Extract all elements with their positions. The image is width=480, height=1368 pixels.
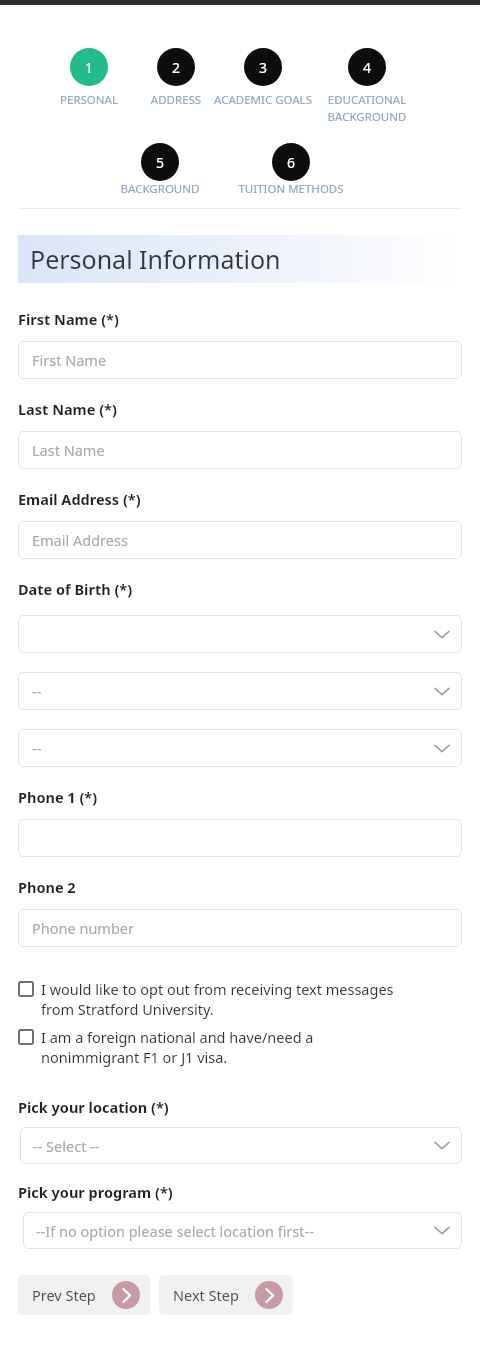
staticText: PERSONAL bbox=[44, 92, 134, 108]
staticText: 3 bbox=[259, 58, 268, 77]
button[interactable]: Last Name bbox=[18, 431, 462, 469]
button[interactable]: Next Step bbox=[159, 1275, 293, 1315]
staticText: Email Address bbox=[32, 530, 128, 550]
staticText: I would like to opt out from receiving t… bbox=[41, 979, 394, 999]
button[interactable]: 2 bbox=[157, 48, 195, 86]
button[interactable] bbox=[18, 615, 462, 653]
staticText: EDUCATIONAL BACKGROUND bbox=[312, 92, 422, 124]
staticText: BACKGROUND bbox=[113, 181, 207, 197]
staticText: -- bbox=[32, 681, 42, 701]
button[interactable]: 5 bbox=[141, 143, 179, 181]
button[interactable]: -- bbox=[18, 672, 462, 710]
staticText: from Stratford University. bbox=[41, 999, 214, 1019]
staticText: 5 bbox=[156, 153, 165, 172]
staticText: Prev Step bbox=[32, 1285, 96, 1305]
staticText: -- Select -- bbox=[33, 1136, 100, 1156]
staticText: 6 bbox=[287, 153, 296, 172]
staticText: Phone 2 bbox=[18, 877, 76, 897]
staticText: Personal Information bbox=[30, 242, 281, 276]
staticText: -- bbox=[32, 738, 42, 758]
button[interactable]: I am a foreign national and have/need a bbox=[18, 1027, 462, 1067]
button[interactable]: First Name bbox=[18, 341, 462, 379]
button[interactable]: I would like to opt out from receiving t… bbox=[18, 979, 462, 1019]
staticText: Last Name bbox=[32, 440, 105, 460]
button[interactable]: --If no option please select location fi… bbox=[23, 1212, 462, 1249]
staticText: Next Step bbox=[173, 1285, 239, 1305]
staticText: I am a foreign national and have/need a bbox=[41, 1027, 314, 1047]
button[interactable]: -- Select -- bbox=[20, 1127, 462, 1164]
button[interactable]: -- bbox=[18, 729, 462, 767]
staticText: Phone number bbox=[32, 918, 134, 938]
button[interactable]: Phone number bbox=[18, 909, 462, 947]
staticText: --If no option please select location fi… bbox=[36, 1221, 314, 1241]
button[interactable]: 1 bbox=[70, 48, 108, 86]
staticText: 1 bbox=[85, 58, 94, 77]
button[interactable]: 6 bbox=[272, 143, 310, 181]
staticText: First Name bbox=[32, 350, 107, 370]
staticText: First Name (*) bbox=[18, 309, 119, 329]
button[interactable]: Prev Step bbox=[18, 1275, 150, 1315]
staticText: Email Address (*) bbox=[18, 489, 141, 509]
staticText: Last Name (*) bbox=[18, 399, 117, 419]
staticText: nonimmigrant F1 or J1 visa. bbox=[41, 1047, 228, 1067]
button[interactable]: 4 bbox=[348, 48, 386, 86]
staticText: ACADEMIC GOALS bbox=[212, 92, 314, 108]
staticText: Pick your program (*) bbox=[18, 1182, 173, 1202]
staticText: ADDRESS bbox=[131, 92, 221, 108]
staticText: Phone 1 (*) bbox=[18, 787, 98, 807]
staticText: Date of Birth (*) bbox=[18, 579, 133, 599]
staticText: TUITION METHODS bbox=[222, 181, 360, 197]
staticText: 2 bbox=[172, 58, 181, 77]
button[interactable] bbox=[18, 819, 462, 857]
button[interactable]: 3 bbox=[244, 48, 282, 86]
staticText: Pick your location (*) bbox=[18, 1097, 169, 1117]
staticText: 4 bbox=[363, 58, 372, 77]
button[interactable]: Email Address bbox=[18, 521, 462, 559]
